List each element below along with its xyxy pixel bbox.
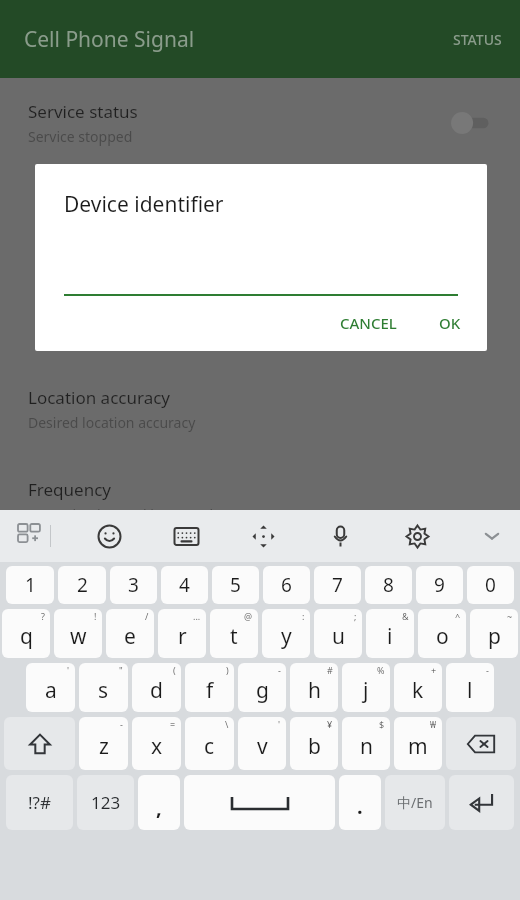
staticText: i	[387, 622, 393, 651]
button[interactable]: -	[446, 663, 494, 712]
staticText: h	[308, 676, 321, 705]
button[interactable]: 8	[365, 566, 412, 604]
button[interactable]: Space	[184, 775, 335, 830]
button[interactable]: 6	[263, 566, 310, 604]
button[interactable]: 9	[416, 566, 463, 604]
staticText: #	[327, 664, 333, 676]
button[interactable]: ,	[138, 775, 180, 830]
staticText: s	[98, 676, 109, 705]
staticText: k	[412, 676, 424, 705]
staticText: 5	[230, 572, 241, 598]
button[interactable]: :	[262, 609, 310, 658]
staticText: 3	[128, 572, 139, 598]
button[interactable]: ¥	[290, 717, 338, 770]
button[interactable]: Service status	[0, 96, 520, 150]
staticText: /	[145, 610, 149, 622]
button[interactable]: ~	[470, 609, 518, 658]
button[interactable]: %	[342, 663, 390, 712]
button[interactable]: 7	[314, 566, 361, 604]
staticText: u	[332, 622, 345, 651]
button[interactable]: !	[54, 609, 102, 658]
staticText: j	[363, 676, 369, 705]
staticText: ¥	[327, 718, 333, 730]
button[interactable]: ₩	[394, 717, 442, 770]
button[interactable]: OK	[425, 303, 475, 343]
button[interactable]: CANCEL	[326, 303, 411, 343]
staticText: o	[436, 622, 449, 651]
button[interactable]: @	[210, 609, 258, 658]
staticText: ...	[193, 610, 201, 622]
staticText: =	[170, 718, 176, 730]
button[interactable]: (	[132, 663, 181, 712]
button[interactable]: =	[132, 717, 181, 770]
button[interactable]: 3	[110, 566, 157, 604]
button[interactable]: 中/En	[385, 775, 445, 830]
button[interactable]: Keyboard layout	[166, 516, 206, 556]
staticText: "	[119, 664, 123, 676]
button[interactable]: !?#	[6, 775, 73, 830]
button[interactable]: 123	[77, 775, 134, 830]
button[interactable]: STATUS	[435, 18, 520, 61]
staticText: $	[379, 718, 385, 730]
button[interactable]: Emoji	[89, 516, 129, 556]
button[interactable]: Enter	[449, 775, 514, 830]
button[interactable]: )	[185, 663, 234, 712]
button[interactable]: Frequency	[0, 474, 520, 528]
button[interactable]: 0	[467, 566, 514, 604]
button[interactable]: Move cursor	[243, 516, 283, 556]
staticText: Cell Phone Signal	[24, 25, 195, 54]
staticText: -	[278, 664, 281, 676]
staticText: z	[99, 732, 109, 761]
button[interactable]: /	[106, 609, 154, 658]
button[interactable]: ?	[2, 609, 50, 658]
staticText: x	[151, 732, 163, 761]
staticText: v	[257, 732, 268, 761]
staticText: 2	[77, 572, 88, 598]
staticText: CANCEL	[340, 313, 397, 333]
button[interactable]: 1	[6, 566, 54, 604]
button[interactable]: 2	[58, 566, 106, 604]
button[interactable]: 4	[161, 566, 208, 604]
button[interactable]: '	[238, 717, 286, 770]
button[interactable]: Settings	[397, 516, 437, 556]
staticText: :	[302, 610, 305, 622]
button[interactable]: Shift	[4, 717, 75, 770]
staticText: -	[120, 718, 123, 730]
staticText: r	[178, 622, 187, 651]
button[interactable]: #	[290, 663, 338, 712]
staticText: d	[150, 676, 163, 705]
button[interactable]: Location accuracy	[0, 382, 520, 436]
button[interactable]: \	[185, 717, 234, 770]
button[interactable]: "	[79, 663, 128, 712]
button[interactable]: ^	[418, 609, 466, 658]
button[interactable]: ...	[158, 609, 206, 658]
staticText: 7	[332, 572, 343, 598]
button[interactable]: &	[366, 609, 414, 658]
button[interactable]: Hide keyboard	[474, 518, 510, 554]
button[interactable]: .	[339, 775, 381, 830]
staticText: 0	[485, 572, 496, 598]
staticText: ?	[41, 610, 45, 622]
staticText: c	[204, 732, 215, 761]
staticText: )	[226, 664, 229, 676]
button[interactable]: -	[79, 717, 128, 770]
staticText: a	[45, 676, 57, 705]
staticText: .	[357, 793, 363, 820]
button[interactable]: $	[342, 717, 390, 770]
staticText: Reporting interval in seconds	[28, 505, 220, 524]
button[interactable]: 5	[212, 566, 259, 604]
staticText: Location accuracy	[28, 386, 171, 409]
button[interactable]: Voice input	[320, 516, 360, 556]
button[interactable]: Backspace	[446, 717, 516, 770]
button[interactable]: -	[238, 663, 286, 712]
staticText: n	[360, 732, 373, 761]
button[interactable]: Add widget	[10, 516, 50, 556]
button[interactable]: '	[26, 663, 75, 712]
staticText: 6	[281, 572, 292, 598]
staticText: OK	[439, 313, 461, 333]
staticText: '	[67, 664, 70, 676]
button[interactable]: +	[394, 663, 442, 712]
button[interactable]: ;	[314, 609, 362, 658]
staticText: 1	[25, 572, 36, 598]
button[interactable]	[64, 262, 458, 296]
